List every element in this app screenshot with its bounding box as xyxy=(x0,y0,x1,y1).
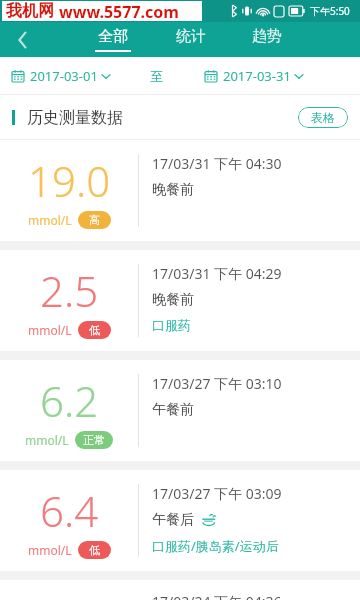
staticText: 低 xyxy=(89,543,100,557)
staticText: 6.4 xyxy=(40,482,99,539)
staticText: mmol/L xyxy=(28,542,72,558)
staticText: mmol/L xyxy=(28,322,72,338)
staticText: 低 xyxy=(89,323,100,337)
staticText: 17/03/31 下午 04:30 xyxy=(152,154,282,173)
staticText: 统计 xyxy=(176,27,206,46)
staticText: 我机网 xyxy=(6,1,54,21)
staticText: 午餐后 xyxy=(152,511,194,529)
button[interactable]: 2.5 xyxy=(0,250,360,351)
staticText: 正常 xyxy=(83,433,105,447)
staticText: 19.0 xyxy=(28,152,111,209)
button[interactable]: Back xyxy=(0,22,44,57)
staticText: 口服药/胰岛素/运动后 xyxy=(152,537,279,555)
staticText: 6.2 xyxy=(40,372,99,429)
staticText: 全部 xyxy=(98,27,128,46)
button[interactable]: 6.4 xyxy=(0,470,360,571)
staticText: mmol/L xyxy=(28,212,72,228)
staticText: 晚餐前 xyxy=(152,181,194,199)
staticText: 17/03/27 下午 03:10 xyxy=(152,374,282,393)
staticText: 高 xyxy=(89,213,100,227)
staticText: 17/03/24 下午 04:36 xyxy=(152,592,282,600)
staticText: 下午5:50 xyxy=(310,4,350,18)
staticText: 历史测量数据 xyxy=(27,108,123,128)
button[interactable]: 趋势 xyxy=(246,22,288,57)
button[interactable]: 6.2 xyxy=(0,360,360,461)
staticText: 2017-03-31 xyxy=(223,67,291,85)
staticText: 趋势 xyxy=(252,27,282,46)
button[interactable]: 2017-03-31 xyxy=(205,67,303,85)
staticText: 口服药 xyxy=(152,317,191,333)
staticText: 午餐前 xyxy=(152,401,194,419)
button[interactable]: 2017-03-01 xyxy=(12,67,110,85)
button[interactable]: 统计 xyxy=(170,22,212,57)
staticText: 2.5 xyxy=(40,262,99,319)
staticText: 至 xyxy=(150,68,163,84)
staticText: 2017-03-01 xyxy=(30,67,98,85)
button[interactable]: 19.0 xyxy=(0,140,360,241)
button[interactable]: 全部 xyxy=(92,22,134,57)
staticText: 晚餐前 xyxy=(152,291,194,309)
staticText: 表格 xyxy=(311,110,335,125)
staticText: 17/03/27 下午 03:09 xyxy=(152,484,282,503)
button[interactable]: 表格 xyxy=(298,107,348,128)
staticText: mmol/L xyxy=(25,432,69,448)
staticText: 17/03/31 下午 04:29 xyxy=(152,264,282,283)
staticText: www.5577.com xyxy=(59,1,179,21)
